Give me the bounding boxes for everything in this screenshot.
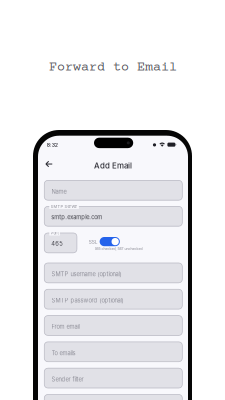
button[interactable]: smtp.example.com (44, 206, 182, 226)
button[interactable]: SMTP password (optional) (44, 289, 182, 309)
button[interactable]: SMTP username (optional) (44, 263, 182, 283)
staticText: smtp.example.com (51, 214, 102, 220)
button[interactable]: To emails (44, 342, 182, 362)
staticText: SMTP username (optional) (52, 271, 122, 278)
button[interactable]: From email (44, 316, 182, 335)
staticText: From email (52, 323, 80, 330)
button[interactable]: 465 (44, 233, 77, 253)
staticText: Add Email (94, 161, 132, 170)
staticText: SMTP Server (51, 204, 78, 209)
staticText: Sender filter (52, 376, 84, 383)
button[interactable]: SSL (83, 237, 114, 246)
button[interactable]: Back (41, 156, 56, 171)
staticText: Name (52, 188, 67, 195)
staticText: Port (51, 231, 59, 235)
staticText: SMTP password (optional) (52, 297, 124, 304)
staticText: SSL (89, 239, 98, 245)
staticText: To emails (52, 350, 76, 356)
button[interactable]: Name (44, 180, 182, 200)
button[interactable]: Subject filter (44, 394, 182, 400)
button[interactable]: Sender filter (44, 368, 182, 388)
staticText: 465 checked, 587 unchecked (94, 247, 142, 251)
staticText: 465 (51, 240, 62, 247)
staticText: Forward to Email (49, 60, 177, 75)
staticText: 8:32 (47, 142, 58, 148)
